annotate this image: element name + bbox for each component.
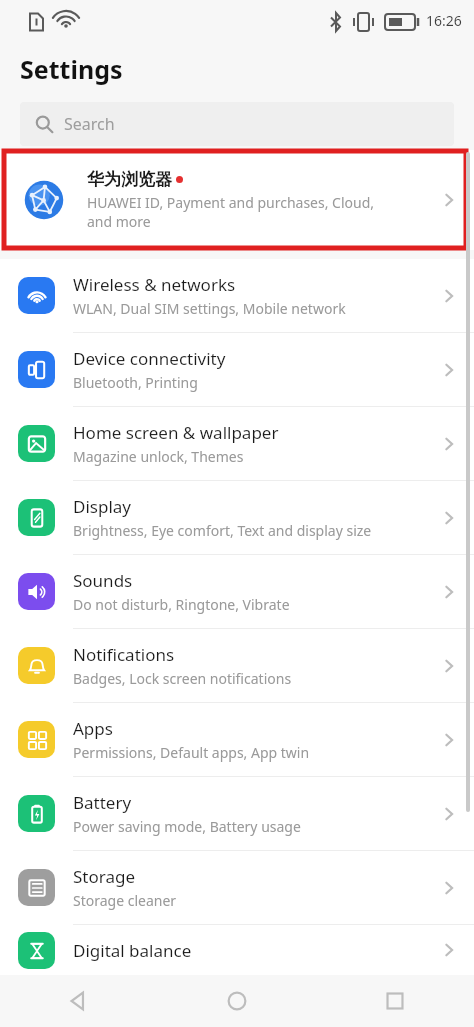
staticText: Power saving mode, Battery usage [73,817,301,836]
button[interactable]: Display [0,481,474,554]
button[interactable]: Sounds [0,555,474,628]
staticText: Notifications [73,643,175,666]
button[interactable]: Battery [0,777,474,850]
staticText: 16:26 [426,11,462,30]
staticText: Magazine unlock, Themes [73,447,244,466]
button[interactable]: Notifications [0,629,474,702]
staticText: Storage cleaner [73,891,177,910]
staticText: Bluetooth, Printing [73,373,198,392]
staticText: Storage [73,865,136,888]
staticText: Badges, Lock screen notifications [73,669,292,688]
staticText: Home screen & wallpaper [73,421,279,444]
staticText: Display [73,495,131,518]
staticText: Sounds [73,569,133,592]
button[interactable]: Storage [0,851,474,924]
button[interactable]: Home [158,975,316,1027]
staticText: Search [64,113,115,135]
staticText: Apps [73,717,113,740]
button[interactable]: Digital balance [0,925,474,975]
staticText: WLAN, Dual SIM settings, Mobile network [73,299,346,318]
button[interactable]: Home screen & wallpaper [0,407,474,480]
staticText: Settings [20,52,123,86]
staticText: Do not disturb, Ringtone, Vibrate [73,595,290,614]
button[interactable]: Wireless & networks [0,259,474,332]
staticText: Device connectivity [73,347,226,370]
button[interactable]: Back [0,975,158,1027]
button[interactable]: Search [20,102,454,146]
staticText: HUAWEI ID, Payment and purchases, Cloud,… [87,193,375,231]
staticText: Wireless & networks [73,273,236,296]
button[interactable]: Recents [316,975,474,1027]
staticText: Brightness, Eye comfort, Text and displa… [73,521,372,540]
button[interactable]: Apps [0,703,474,776]
staticText: Permissions, Default apps, App twin [73,743,310,762]
button[interactable]: Device connectivity [0,333,474,406]
staticText: 华为浏览器 [87,169,172,190]
staticText: Battery [73,791,132,814]
button[interactable]: 华为浏览器 [0,150,474,250]
staticText: Digital balance [73,939,192,962]
